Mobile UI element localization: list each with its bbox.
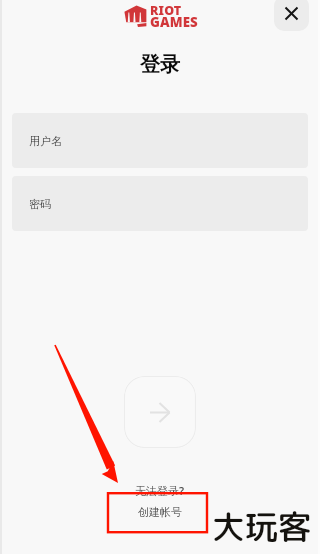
staticText: 无法登录?: [135, 483, 185, 498]
staticText: RIOT: [150, 2, 182, 19]
staticText: 密码: [29, 197, 51, 211]
staticText: 登录: [140, 52, 180, 77]
button[interactable]: Submit: [124, 376, 196, 448]
button[interactable]: Close: [274, 0, 309, 31]
staticText: 创建帐号: [138, 505, 182, 519]
staticText: 用户名: [29, 134, 62, 148]
button[interactable]: 无法登录?: [125, 480, 195, 501]
button[interactable]: 用户名: [12, 113, 308, 168]
staticText: 大玩客: [212, 504, 311, 550]
staticText: GAMES: [150, 13, 198, 31]
button[interactable]: 创建帐号: [128, 502, 192, 522]
button[interactable]: 密码: [12, 176, 308, 231]
